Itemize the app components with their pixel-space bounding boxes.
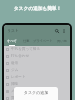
staticText: レポート [11, 75, 26, 80]
button[interactable]: すべて [4, 36, 19, 46]
button[interactable]: ジム [6, 67, 68, 74]
staticText: 牛乳を買って帰る [11, 47, 41, 52]
staticText: タスクの追加も簡単！ [0, 5, 75, 11]
button[interactable]: 打ち合わせ [6, 53, 68, 60]
button[interactable]: プライベート [33, 36, 53, 46]
staticText: 掃除 [11, 82, 19, 87]
button[interactable]: More options [61, 28, 67, 34]
staticText: 打ち合わせ [11, 54, 30, 59]
staticText: メール [11, 89, 22, 94]
button[interactable]: 仕事 [19, 36, 33, 46]
button[interactable]: 買い物 [6, 95, 68, 100]
button[interactable]: 掃除 [6, 81, 68, 88]
staticText: プライベート [33, 39, 53, 43]
staticText: タスクの追加 [14, 90, 58, 95]
button[interactable]: 牛乳を買って帰る [6, 46, 68, 53]
staticText: 返信 [11, 61, 19, 66]
staticText: 買い物 [11, 96, 22, 100]
staticText: 買い物 [57, 39, 67, 43]
staticText: リスト [7, 28, 19, 33]
staticText: ジム [11, 68, 19, 73]
button[interactable]: レポート [6, 74, 68, 81]
button[interactable]: Search [54, 28, 60, 34]
staticText: 仕事 [23, 39, 30, 43]
button[interactable]: メール [6, 88, 68, 95]
staticText: すべて [7, 39, 17, 43]
button[interactable]: 返信 [6, 60, 68, 67]
button[interactable]: 買い物 [53, 36, 70, 46]
